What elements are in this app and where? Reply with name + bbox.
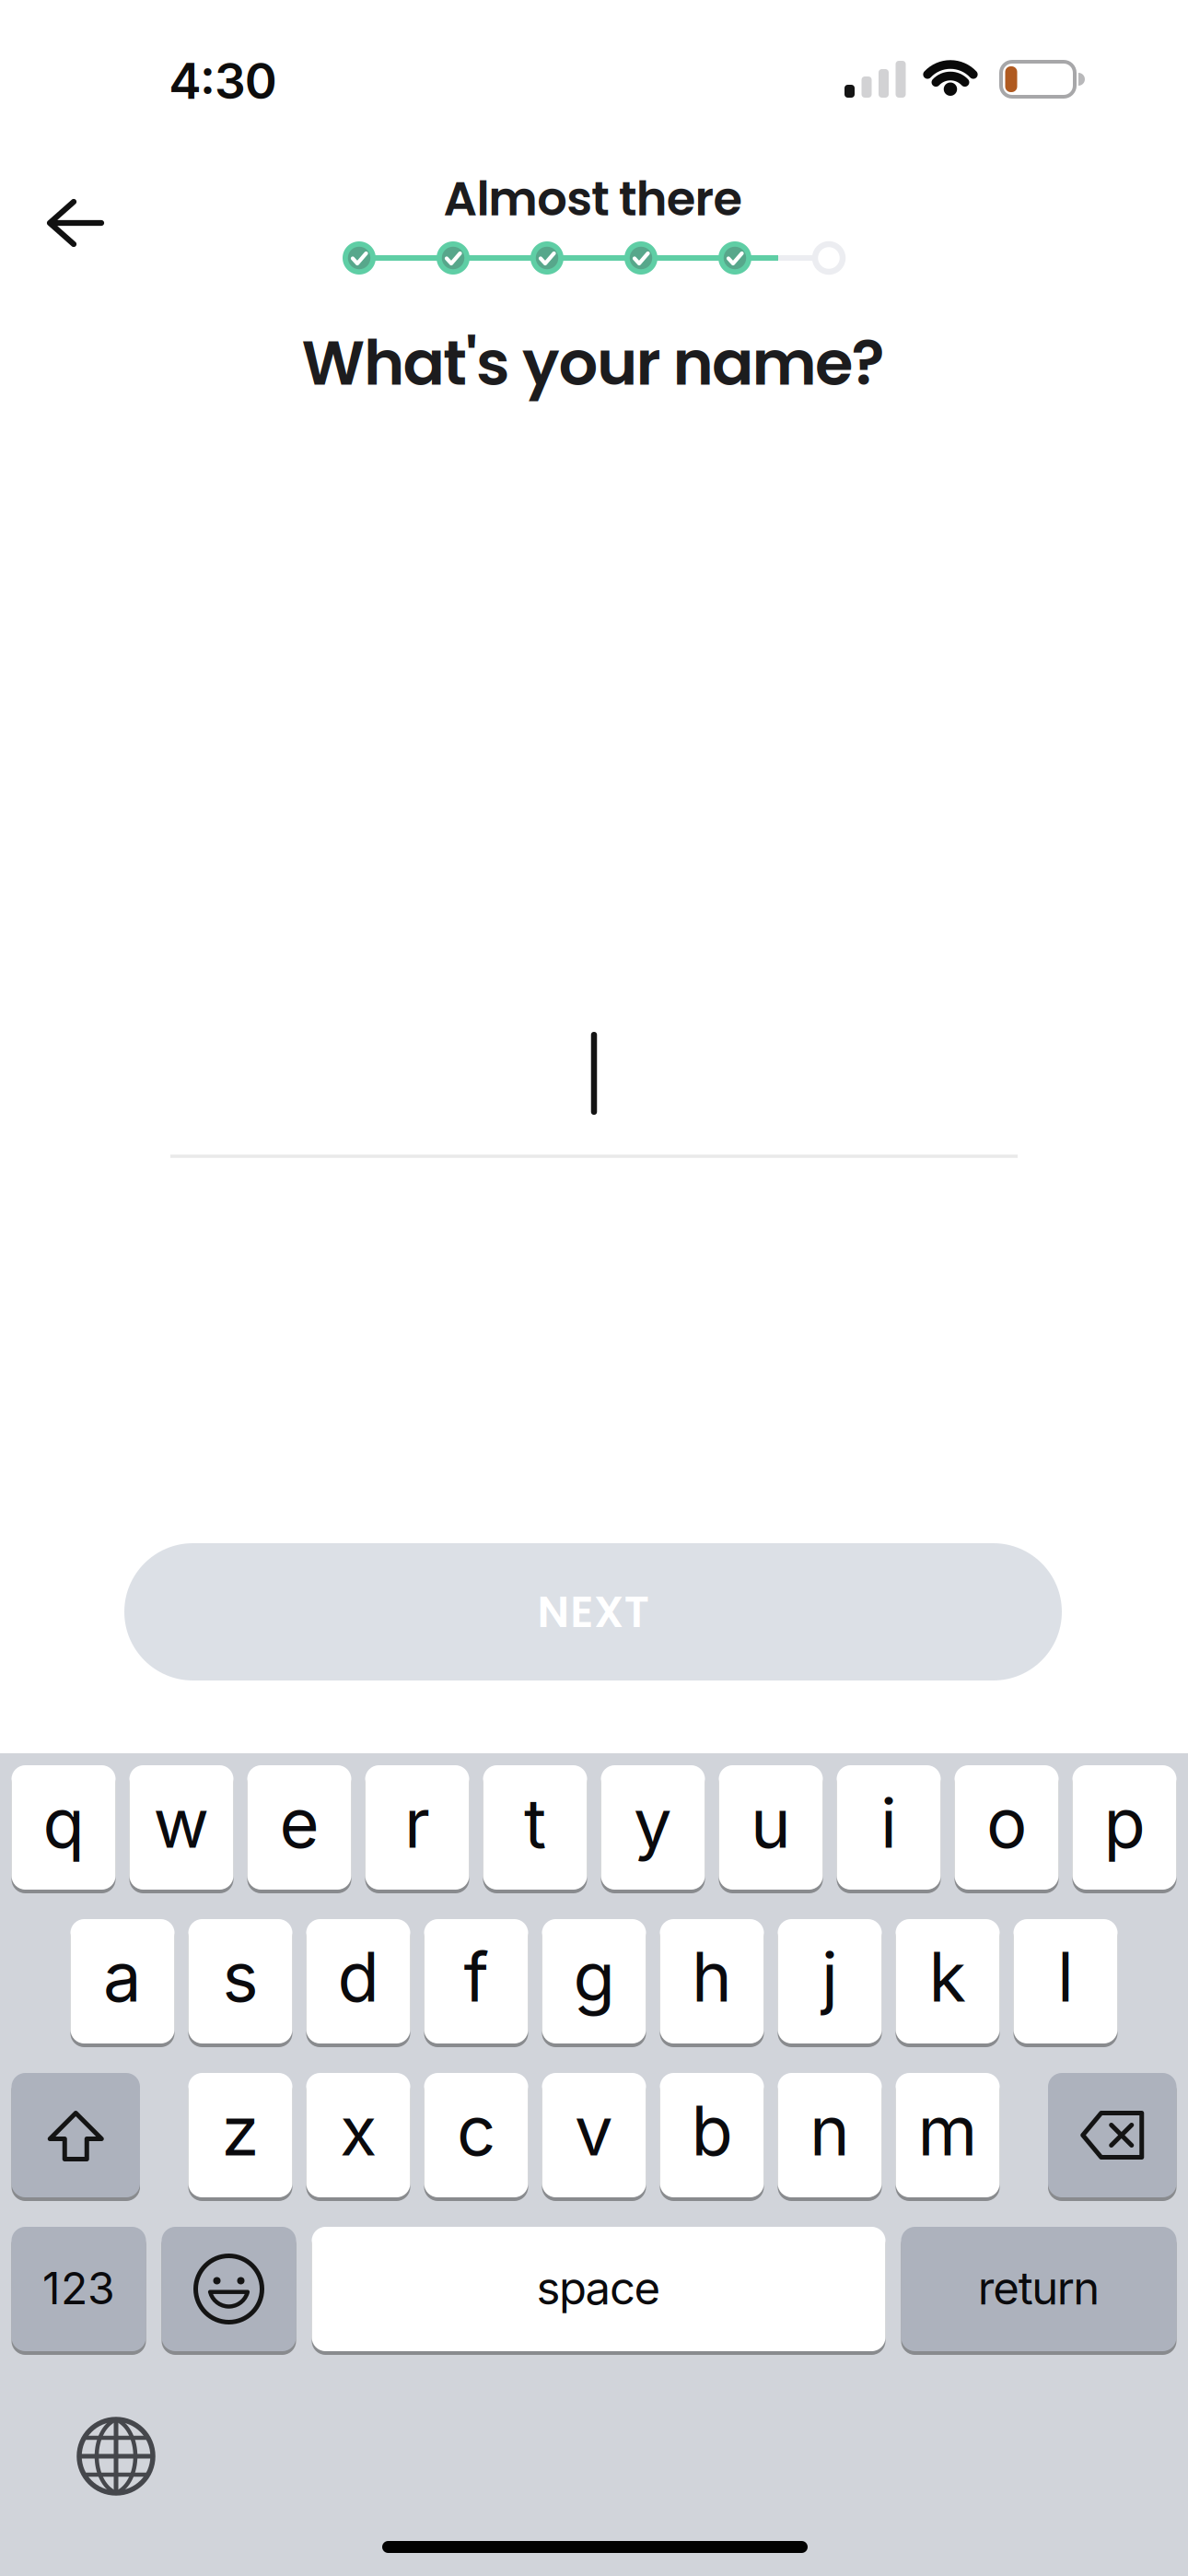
staticText: z xyxy=(221,2089,259,2172)
staticText: o xyxy=(986,1782,1027,1864)
staticText: w xyxy=(153,1782,210,1864)
button[interactable]: z xyxy=(188,2071,292,2199)
button[interactable]: j xyxy=(778,1917,882,2045)
button[interactable]: a xyxy=(70,1917,175,2045)
button[interactable]: h xyxy=(660,1917,764,2045)
button[interactable]: w xyxy=(129,1763,233,1891)
button[interactable]: NEXT xyxy=(124,1543,1062,1680)
button[interactable]: i xyxy=(837,1763,941,1891)
staticText: f xyxy=(464,1935,489,2018)
staticText: l xyxy=(1057,1935,1074,2018)
button[interactable]: q xyxy=(12,1763,116,1891)
button[interactable]: m xyxy=(896,2071,1000,2199)
staticText: m xyxy=(918,2089,978,2172)
staticText: g xyxy=(573,1935,615,2018)
button[interactable]: Delete xyxy=(1048,2071,1176,2199)
staticText: NEXT xyxy=(537,1582,649,1642)
staticText: t xyxy=(524,1782,546,1864)
staticText: y xyxy=(634,1782,672,1864)
button[interactable]: d xyxy=(306,1917,410,2045)
button[interactable]: f xyxy=(424,1917,528,2045)
staticText: 123 xyxy=(42,2261,115,2315)
button[interactable]: u xyxy=(719,1763,823,1891)
button[interactable]: Back xyxy=(46,197,105,249)
staticText: d xyxy=(338,1935,379,2018)
staticText: x xyxy=(340,2089,377,2172)
staticText: e xyxy=(280,1782,319,1864)
button[interactable]: r xyxy=(365,1763,469,1891)
button[interactable]: Emoji xyxy=(162,2225,296,2353)
staticText: n xyxy=(809,2089,850,2172)
staticText: i xyxy=(880,1782,897,1864)
staticText: u xyxy=(751,1782,791,1864)
staticText: h xyxy=(692,1935,732,2018)
button[interactable]: y xyxy=(601,1763,705,1891)
staticText: What's your name? xyxy=(302,320,885,406)
staticText: r xyxy=(404,1782,430,1864)
staticText: p xyxy=(1104,1782,1145,1864)
staticText: k xyxy=(929,1935,967,2018)
staticText: b xyxy=(691,2089,733,2172)
button[interactable]: s xyxy=(188,1917,292,2045)
button[interactable]: Name text field xyxy=(170,1001,1018,1158)
button[interactable]: l xyxy=(1013,1917,1118,2045)
staticText: q xyxy=(43,1782,84,1864)
staticText: j xyxy=(821,1935,838,2018)
staticText: space xyxy=(536,2261,661,2315)
button[interactable]: x xyxy=(306,2071,410,2199)
button[interactable]: t xyxy=(483,1763,587,1891)
staticText: c xyxy=(457,2089,495,2172)
staticText: s xyxy=(222,1935,258,2018)
button[interactable]: e xyxy=(247,1763,351,1891)
button[interactable]: b xyxy=(660,2071,764,2199)
button[interactable]: v xyxy=(542,2071,646,2199)
button[interactable]: g xyxy=(542,1917,646,2045)
staticText: return xyxy=(978,2261,1100,2315)
staticText: 4:30 xyxy=(169,52,277,111)
button[interactable]: 123 xyxy=(12,2225,146,2353)
staticText: Almost there xyxy=(443,166,743,232)
button[interactable]: o xyxy=(955,1763,1059,1891)
staticText: a xyxy=(103,1935,142,2018)
button[interactable]: k xyxy=(896,1917,1000,2045)
button[interactable]: Next keyboard xyxy=(77,2418,155,2495)
staticText: v xyxy=(575,2089,613,2172)
button[interactable]: Shift xyxy=(12,2071,140,2199)
button[interactable]: p xyxy=(1072,1763,1176,1891)
button[interactable]: n xyxy=(778,2071,882,2199)
button[interactable]: space xyxy=(312,2225,885,2353)
button[interactable]: return xyxy=(901,2225,1176,2353)
button[interactable]: c xyxy=(424,2071,528,2199)
